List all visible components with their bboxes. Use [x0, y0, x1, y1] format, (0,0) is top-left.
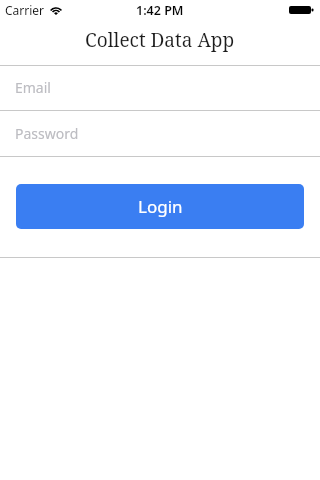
staticText: Login: [138, 195, 183, 218]
staticText: Collect Data App: [85, 27, 235, 53]
button[interactable]: Login: [16, 184, 304, 229]
button[interactable]: Email: [0, 65, 320, 110]
staticText: Email: [15, 78, 51, 97]
staticText: Carrier: [5, 2, 45, 18]
staticText: Password: [15, 124, 79, 143]
button[interactable]: Password: [0, 110, 320, 156]
staticText: 1:42 PM: [136, 2, 184, 19]
